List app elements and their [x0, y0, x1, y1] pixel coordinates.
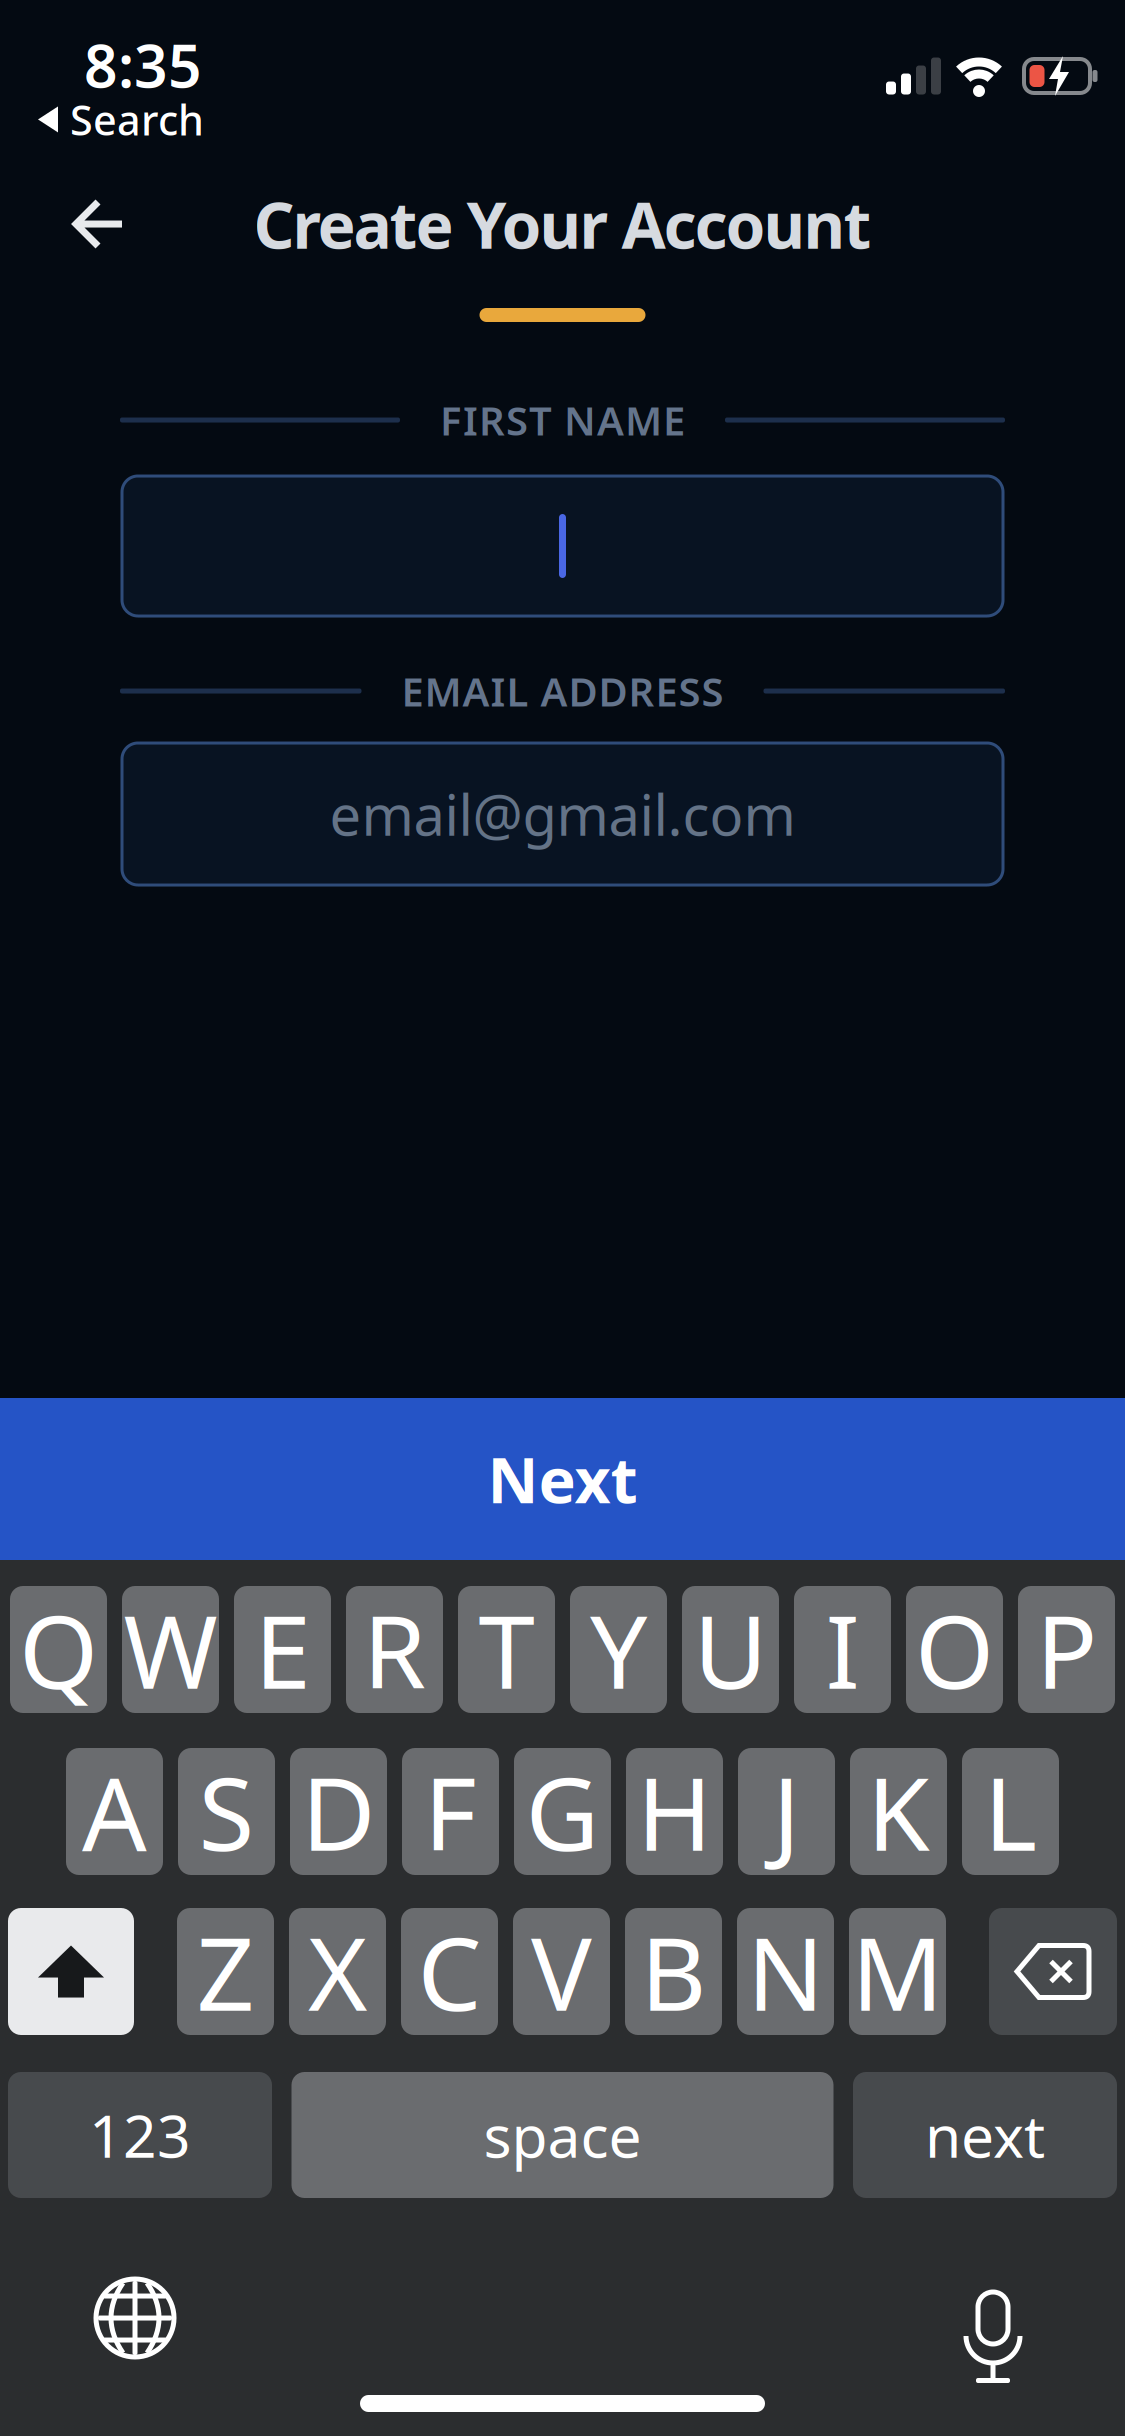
- staticText: D: [301, 1744, 375, 1879]
- staticText: U: [693, 1582, 767, 1717]
- button[interactable]: Y: [570, 1586, 667, 1713]
- button[interactable]: [989, 1908, 1117, 2035]
- staticText: H: [637, 1744, 712, 1879]
- button[interactable]: K: [850, 1748, 947, 1875]
- staticText: I: [825, 1582, 859, 1717]
- button[interactable]: W: [122, 1586, 219, 1713]
- button[interactable]: A: [66, 1748, 163, 1875]
- staticText: L: [984, 1744, 1037, 1879]
- staticText: 8:35: [84, 26, 202, 104]
- staticText: Create Your Account: [253, 181, 871, 266]
- staticText: G: [525, 1744, 599, 1879]
- staticText: C: [417, 1904, 481, 2039]
- staticText: B: [640, 1904, 706, 2039]
- staticText: 123: [89, 2096, 191, 2174]
- button[interactable]: next: [853, 2072, 1117, 2198]
- button[interactable]: R: [346, 1586, 443, 1713]
- button[interactable]: N: [737, 1908, 834, 2035]
- button[interactable]: O: [906, 1586, 1003, 1713]
- button[interactable]: J: [738, 1748, 835, 1875]
- staticText: K: [867, 1744, 930, 1879]
- staticText: T: [478, 1582, 534, 1717]
- button[interactable]: Q: [10, 1586, 107, 1713]
- staticText: EMAIL ADDRESS: [401, 664, 723, 717]
- button[interactable]: M: [849, 1908, 946, 2035]
- button[interactable]: email@gmail.com: [122, 743, 1003, 885]
- button[interactable]: Next: [0, 1398, 1125, 1560]
- staticText: Q: [19, 1582, 98, 1717]
- staticText: email@gmail.com: [329, 777, 795, 851]
- staticText: Z: [196, 1904, 254, 2039]
- button[interactable]: P: [1018, 1586, 1115, 1713]
- staticText: X: [308, 1904, 367, 2039]
- staticText: Search: [70, 92, 204, 147]
- button[interactable]: T: [458, 1586, 555, 1713]
- staticText: N: [747, 1904, 824, 2039]
- button[interactable]: [0, 189, 125, 259]
- staticText: FIRST NAME: [440, 393, 685, 446]
- button[interactable]: V: [513, 1908, 610, 2035]
- staticText: next: [925, 2096, 1045, 2174]
- staticText: W: [123, 1582, 217, 1717]
- staticText: M: [851, 1904, 943, 2039]
- button[interactable]: C: [401, 1908, 498, 2035]
- staticText: space: [483, 2096, 641, 2174]
- button[interactable]: X: [289, 1908, 386, 2035]
- button[interactable]: [122, 476, 1003, 616]
- button[interactable]: S: [178, 1748, 275, 1875]
- button[interactable]: D: [290, 1748, 387, 1875]
- staticText: P: [1036, 1582, 1097, 1717]
- button[interactable]: H: [626, 1748, 723, 1875]
- button[interactable]: B: [625, 1908, 722, 2035]
- button[interactable]: G: [514, 1748, 611, 1875]
- staticText: R: [363, 1582, 426, 1717]
- button[interactable]: I: [794, 1586, 891, 1713]
- button[interactable]: E: [234, 1586, 331, 1713]
- staticText: A: [82, 1744, 147, 1879]
- button[interactable]: 123: [8, 2072, 272, 2198]
- staticText: O: [915, 1582, 994, 1717]
- button[interactable]: L: [962, 1748, 1059, 1875]
- button[interactable]: [0, 2278, 175, 2358]
- staticText: Next: [487, 1437, 637, 1521]
- button[interactable]: space: [291, 2072, 833, 2198]
- staticText: V: [531, 1904, 592, 2039]
- button[interactable]: Search: [0, 0, 204, 147]
- staticText: Y: [590, 1582, 647, 1717]
- button[interactable]: U: [682, 1586, 779, 1713]
- button[interactable]: F: [402, 1748, 499, 1875]
- staticText: J: [772, 1744, 800, 1879]
- staticText: S: [198, 1744, 254, 1879]
- button[interactable]: Z: [177, 1908, 274, 2035]
- staticText: E: [254, 1582, 310, 1717]
- button[interactable]: [8, 1908, 134, 2035]
- button[interactable]: [963, 2272, 1125, 2364]
- staticText: F: [424, 1744, 477, 1879]
